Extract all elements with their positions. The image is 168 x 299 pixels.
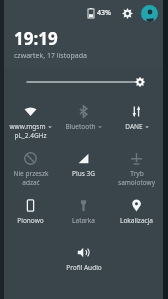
button[interactable]: Profil Audio [57, 239, 110, 286]
staticText: Nie przeszk [13, 169, 49, 178]
staticText: Plus 3G [72, 169, 95, 178]
button[interactable]: Bluetooth [57, 98, 110, 145]
button[interactable]: Brightness [4, 68, 163, 96]
staticText: czwartek, 17 listopada [14, 51, 87, 61]
staticText: Pionowo [17, 216, 44, 225]
button[interactable]: www.mgsm [4, 98, 57, 145]
staticText: 19:19 [14, 27, 58, 50]
button[interactable]: Pionowo [4, 192, 57, 239]
staticText: DANE [125, 122, 143, 131]
staticText: Tryb [130, 169, 144, 178]
staticText: pL_2.4GHz [14, 131, 47, 140]
staticText: adzać [22, 178, 40, 187]
staticText: www.mgsm [9, 122, 46, 131]
staticText: Profil Audio [66, 263, 102, 272]
button[interactable]: Nie przeszk [4, 145, 57, 192]
button[interactable]: Latarka [57, 192, 110, 239]
staticText: samolotowy [118, 178, 155, 187]
staticText: 43% [97, 8, 111, 18]
staticText: Latarka [72, 216, 95, 225]
button[interactable]: Plus 3G [57, 145, 110, 192]
button[interactable]: DANE [110, 98, 163, 145]
button[interactable]: User profile [141, 5, 158, 22]
staticText: Lokalizacja [120, 216, 153, 225]
staticText: Bluetooth [65, 122, 96, 131]
button[interactable]: Settings [119, 5, 135, 21]
button[interactable]: Tryb [110, 145, 163, 192]
button[interactable]: Lokalizacja [110, 192, 163, 239]
